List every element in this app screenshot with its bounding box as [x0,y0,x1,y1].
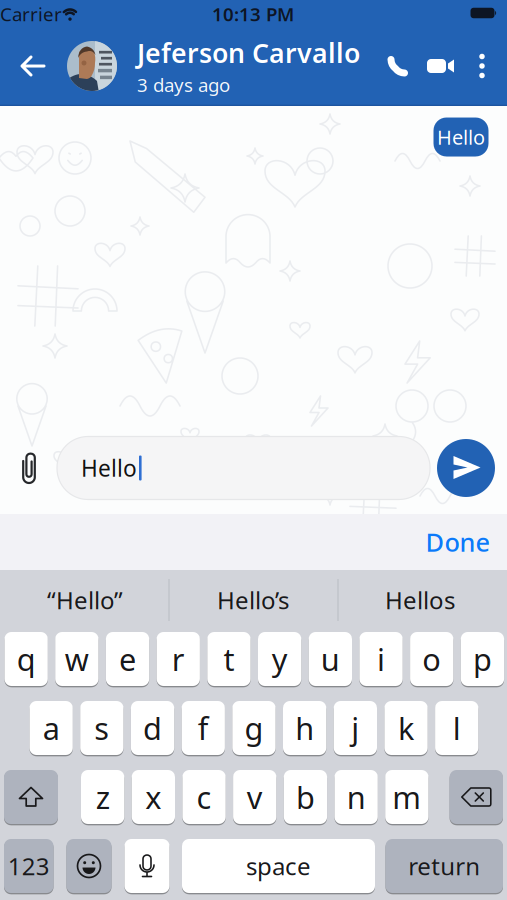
button[interactable]: s [80,700,123,756]
staticText: v [247,777,263,817]
button[interactable]: u [309,631,352,687]
button[interactable]: Call [378,44,418,88]
button[interactable]: j [334,700,377,756]
staticText: Carrier [0,2,62,26]
staticText: 123 [8,850,50,882]
button[interactable]: z [81,769,124,825]
staticText: Jeferson Carvallo [137,35,360,70]
staticText: b [296,777,315,817]
button[interactable]: Hello’s [173,576,333,624]
staticText: q [17,639,36,679]
button[interactable]: a [29,700,73,756]
button[interactable]: Hellos [340,576,500,624]
staticText: 10:13 PM [212,2,294,26]
button[interactable]: Video call [421,44,461,88]
staticText: j [351,708,359,748]
button[interactable]: return [385,838,503,894]
button[interactable]: y [258,631,301,687]
button[interactable]: t [207,631,251,687]
staticText: f [198,708,209,748]
staticText: z [96,777,110,817]
staticText: k [398,708,414,748]
button[interactable]: b [284,769,327,825]
button[interactable]: Dictate [124,838,169,894]
button[interactable]: Attach file [11,445,47,489]
button[interactable]: 123 [4,838,53,894]
button[interactable]: r [157,631,200,687]
button[interactable]: Back [11,44,55,88]
button[interactable]: e [106,631,149,687]
button[interactable]: g [232,700,276,756]
button[interactable]: i [359,631,403,687]
staticText: y [272,639,288,679]
button[interactable]: v [233,769,276,825]
staticText: “Hello” [47,584,123,616]
button[interactable]: c [182,769,226,825]
button[interactable]: Done [417,525,498,559]
staticText: Done [425,525,490,559]
button[interactable]: “Hello” [5,576,165,624]
button[interactable]: Emoji [66,838,111,894]
button[interactable]: h [283,700,326,756]
button[interactable]: f [182,700,225,756]
staticText: d [143,708,162,748]
button[interactable]: o [410,631,453,687]
staticText: Hello [437,124,485,150]
button[interactable]: p [461,631,504,687]
staticText: space [246,850,311,882]
staticText: s [94,708,109,748]
staticText: c [197,777,212,817]
staticText: return [408,850,480,882]
button[interactable]: l [435,700,478,756]
staticText: Hello [81,453,137,483]
staticText: a [43,708,60,748]
staticText: u [321,639,340,679]
button[interactable]: space [182,838,375,894]
staticText: h [295,708,314,748]
staticText: Hello’s [217,584,289,616]
staticText: x [145,777,161,817]
staticText: n [347,777,366,817]
button[interactable]: More options [467,44,497,88]
button[interactable]: k [384,700,428,756]
staticText: o [422,639,441,679]
staticText: r [172,639,185,679]
button[interactable]: Contact photo [67,41,117,91]
staticText: e [119,639,136,679]
button[interactable]: n [334,769,378,825]
staticText: 3 days ago [137,72,230,97]
staticText: p [473,639,492,679]
staticText: i [377,639,385,679]
button[interactable]: Send [437,439,495,497]
staticText: l [453,708,461,748]
button[interactable]: d [131,700,174,756]
staticText: w [65,639,89,679]
staticText: g [244,708,263,748]
staticText: m [392,777,421,817]
button[interactable]: Shift [4,769,58,825]
button[interactable]: x [132,769,175,825]
staticText: Hellos [385,584,455,616]
button[interactable]: w [55,631,98,687]
button[interactable]: q [4,631,48,687]
staticText: t [223,639,234,679]
button[interactable]: m [385,769,428,825]
button[interactable]: Delete [450,769,503,825]
